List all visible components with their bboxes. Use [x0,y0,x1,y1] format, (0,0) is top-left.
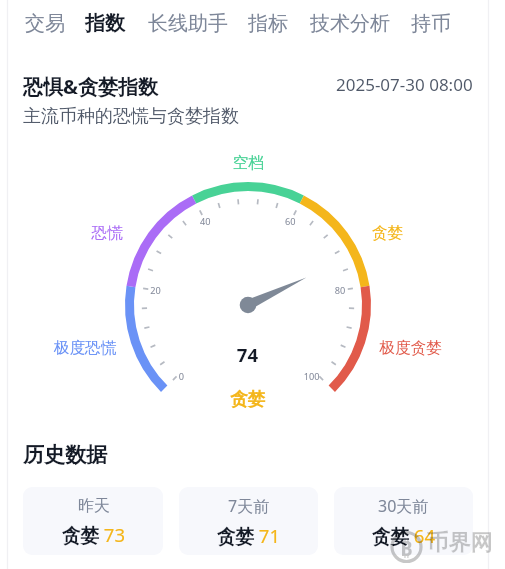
staticText: 持币 [411,11,451,36]
staticText: 长线助手 [148,11,228,36]
staticText: 技术分析 [310,11,390,36]
staticText: 7天前 [228,495,270,517]
staticText: 交易 [25,11,65,36]
button[interactable]: 30天前 [334,487,473,555]
staticText: 指数 [85,11,125,36]
staticText: 主流币种的恐慌与贪婪指数 [23,105,239,128]
button[interactable]: 持币 [411,11,451,36]
button[interactable]: 指数 [85,11,125,36]
button[interactable]: 昨天 [23,487,163,555]
button[interactable]: 交易 [25,11,65,36]
staticText: 贪婪 73 [62,522,125,547]
staticText: 贪婪 64 [372,523,435,548]
staticText: 贪婪 71 [217,523,280,548]
staticText: 2025-07-30 08:00 [336,73,473,96]
staticText: 昨天 [78,496,110,516]
staticText: 30天前 [378,495,429,517]
button[interactable]: 长线助手 [148,11,228,36]
staticText: 历史数据 [23,442,107,468]
button[interactable]: 技术分析 [310,11,390,36]
button[interactable]: 指标 [248,11,288,36]
staticText: 指标 [248,11,288,36]
staticText: 恐惧&贪婪指数 [23,73,158,100]
button[interactable]: 7天前 [179,487,318,555]
